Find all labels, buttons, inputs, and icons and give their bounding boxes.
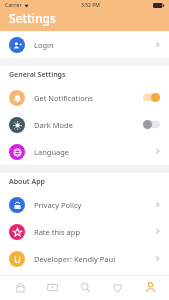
- button[interactable]: Login: [0, 31, 169, 58]
- button[interactable]: Home: [7, 275, 33, 300]
- button[interactable]: Dark Mode: [0, 111, 169, 138]
- staticText: Get Notifications: [34, 93, 93, 103]
- button[interactable]: Search: [72, 275, 98, 300]
- staticText: About App: [9, 177, 46, 187]
- button[interactable]: Profile: [137, 275, 163, 300]
- button[interactable]: Rate this app: [0, 218, 169, 245]
- button[interactable]: Toggle on: [143, 93, 160, 102]
- button[interactable]: Toggle off: [143, 120, 160, 129]
- staticText: Dark Mode: [34, 120, 73, 130]
- staticText: Privacy Policy: [34, 200, 82, 210]
- button[interactable]: Favorites: [104, 275, 130, 300]
- staticText: Carrier: [5, 2, 22, 9]
- button[interactable]: Language: [0, 138, 169, 165]
- button[interactable]: Privacy Policy: [0, 191, 169, 218]
- staticText: Rate this app: [34, 227, 81, 237]
- staticText: Login: [34, 40, 54, 50]
- button[interactable]: Developer: Kendly Paul: [0, 245, 169, 272]
- staticText: Developer: Kendly Paul: [34, 254, 116, 264]
- button[interactable]: Get Notifications: [0, 84, 169, 111]
- staticText: Settings: [9, 10, 56, 26]
- staticText: General Settings: [9, 70, 66, 80]
- staticText: Language: [34, 147, 70, 157]
- button[interactable]: Videos: [39, 275, 65, 300]
- staticText: 3:52 PM: [81, 2, 100, 9]
